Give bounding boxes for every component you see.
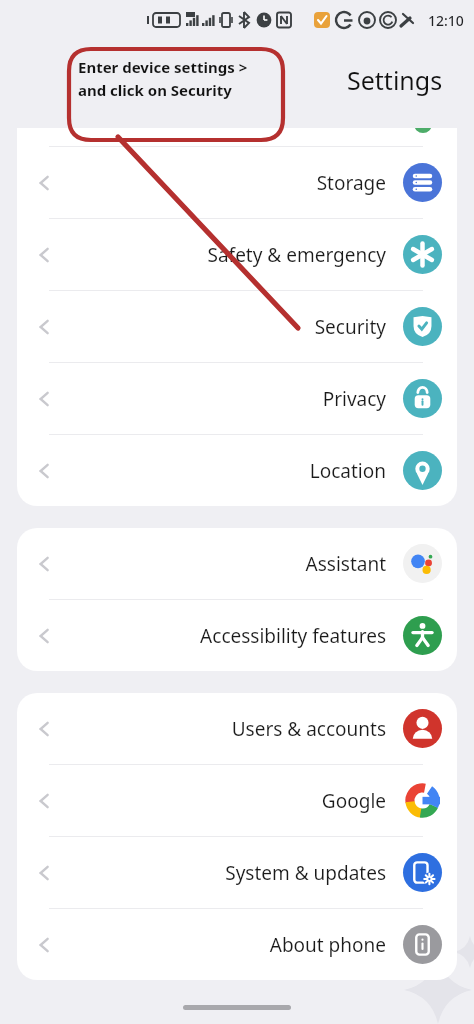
staticText: System & updates [225,860,386,886]
button[interactable]: Users & accounts [17,693,457,764]
button[interactable]: Accessibility features [17,600,457,671]
button[interactable]: Security [17,291,457,362]
staticText: Location [309,458,386,484]
staticText: Assistant [305,551,386,577]
staticText: Enter device settings > [78,57,248,77]
staticText: Accessibility features [200,623,386,649]
button[interactable]: Privacy [17,363,457,434]
staticText: Settings [347,63,443,97]
staticText: About phone [269,932,386,958]
button[interactable]: Safety & emergency [17,219,457,290]
staticText: and click on Security [78,80,232,100]
button[interactable]: About phone [17,909,457,980]
staticText: Users & accounts [231,716,386,742]
button[interactable]: System & updates [17,837,457,908]
staticText: Privacy [322,386,386,412]
button[interactable]: Storage [17,147,457,218]
staticText: Safety & emergency [207,242,386,268]
staticText: 12:10 [428,11,464,30]
staticText: Google [321,788,386,814]
button[interactable]: Location [17,435,457,506]
staticText: Security [314,314,386,340]
staticText: Storage [316,170,386,196]
button[interactable]: Google [17,765,457,836]
button[interactable]: Assistant [17,528,457,599]
